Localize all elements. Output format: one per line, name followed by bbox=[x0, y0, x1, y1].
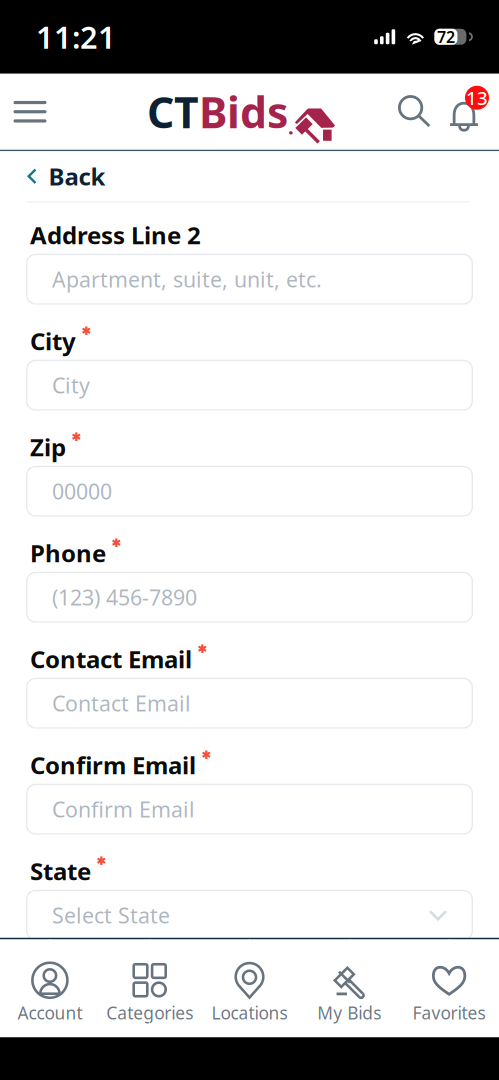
button[interactable]: Categories bbox=[100, 939, 200, 1037]
staticText: CT bbox=[147, 83, 199, 140]
staticText: (123) 456-7890 bbox=[52, 583, 197, 611]
button[interactable]: Account bbox=[0, 939, 100, 1037]
staticText: Address Line 2 bbox=[30, 219, 201, 251]
staticText: Contact Email bbox=[52, 689, 191, 717]
staticText: Select State bbox=[52, 901, 170, 929]
staticText: Favorites bbox=[413, 1001, 486, 1024]
staticText: Contact Email bbox=[30, 643, 192, 675]
staticText: Categories bbox=[106, 1001, 193, 1024]
staticText: 13 bbox=[466, 85, 488, 110]
staticText: My Bids bbox=[317, 1001, 381, 1024]
staticText: Apartment, suite, unit, etc. bbox=[52, 265, 322, 293]
button[interactable]: My Bids bbox=[299, 939, 399, 1037]
button[interactable]: Menu bbox=[0, 86, 60, 138]
staticText: 11:21 bbox=[36, 16, 116, 57]
staticText: Locations bbox=[211, 1001, 287, 1024]
button[interactable]: Search bbox=[391, 89, 437, 135]
staticText: . bbox=[288, 113, 294, 140]
staticText: Phone bbox=[30, 537, 106, 569]
staticText: State bbox=[30, 855, 91, 887]
staticText: 72 bbox=[437, 26, 455, 47]
staticText: Bids bbox=[199, 83, 288, 140]
staticText: City bbox=[30, 325, 76, 357]
staticText: Zip bbox=[30, 431, 66, 463]
staticText: Account bbox=[17, 1001, 82, 1024]
button[interactable]: Back bbox=[0, 151, 499, 201]
staticText: 00000 bbox=[52, 477, 112, 505]
staticText: Confirm Email bbox=[52, 795, 195, 823]
button[interactable]: Favorites bbox=[399, 939, 499, 1037]
button[interactable]: Notifications bbox=[441, 89, 487, 135]
button[interactable]: Locations bbox=[200, 939, 299, 1037]
staticText: City bbox=[52, 371, 90, 399]
staticText: Back bbox=[48, 160, 105, 192]
staticText: Confirm Email bbox=[30, 749, 196, 781]
